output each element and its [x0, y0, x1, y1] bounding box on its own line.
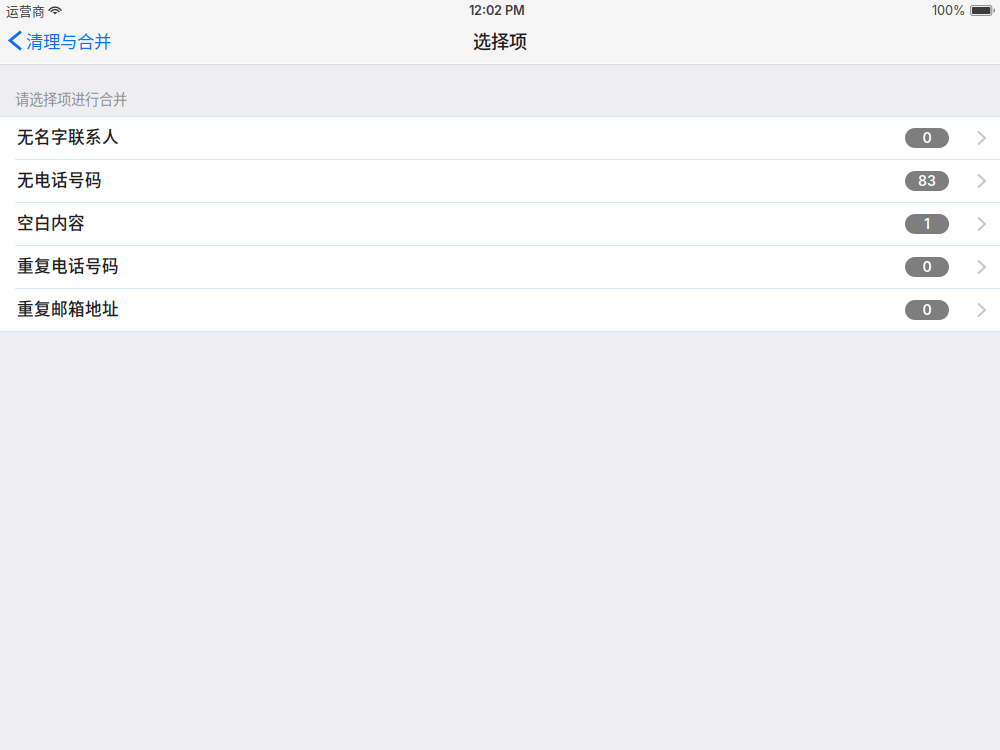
button[interactable]: 清理与合并 — [0, 21, 121, 63]
staticText: 83 — [918, 172, 936, 189]
staticText: 0 — [922, 301, 931, 318]
staticText: 运营商 — [6, 1, 45, 20]
staticText: 请选择项进行合并 — [15, 88, 127, 109]
staticText: 重复邮箱地址 — [17, 296, 119, 320]
staticText: 重复电话号码 — [17, 253, 119, 277]
button[interactable]: 无电话号码 — [0, 160, 1000, 203]
button[interactable]: 重复电话号码 — [0, 246, 1000, 289]
staticText: 无电话号码 — [17, 167, 102, 191]
button[interactable]: 重复邮箱地址 — [0, 289, 1000, 332]
staticText: 0 — [922, 129, 931, 146]
staticText: 0 — [922, 258, 931, 275]
staticText: 空白内容 — [17, 210, 85, 234]
staticText: 12:02 PM — [469, 3, 525, 18]
staticText: 1 — [924, 215, 930, 232]
staticText: 清理与合并 — [26, 28, 111, 53]
staticText: 选择项 — [473, 27, 527, 54]
button[interactable]: 空白内容 — [0, 203, 1000, 246]
staticText: 100% — [932, 3, 965, 18]
button[interactable]: 无名字联系人 — [0, 117, 1000, 160]
staticText: 无名字联系人 — [17, 124, 119, 148]
